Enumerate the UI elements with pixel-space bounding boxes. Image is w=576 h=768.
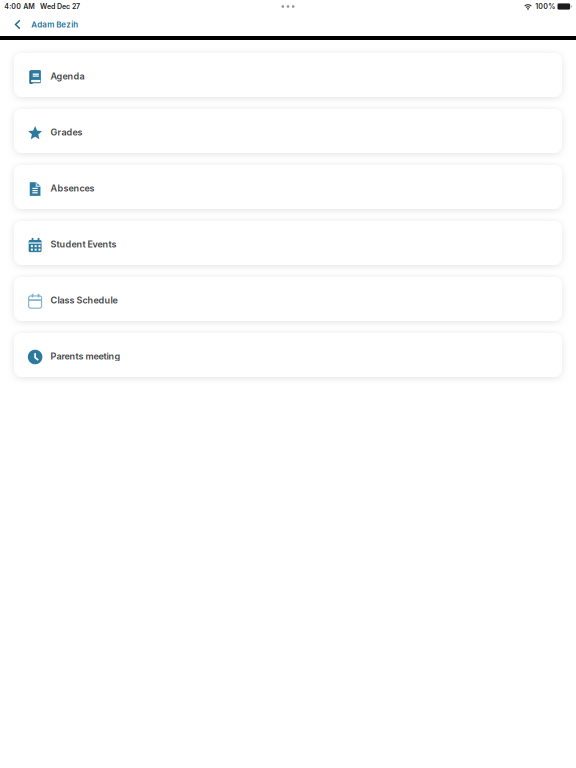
staticText: Grades bbox=[51, 127, 83, 138]
staticText: 4:00 AM bbox=[4, 2, 35, 11]
button[interactable]: Absences bbox=[14, 165, 562, 209]
button[interactable]: Agenda bbox=[14, 53, 562, 97]
staticText: Adam Bezih bbox=[31, 20, 78, 29]
button[interactable]: Parents meeting bbox=[14, 333, 562, 377]
button[interactable]: Back to Adam Bezih bbox=[0, 13, 78, 36]
button[interactable]: Class Schedule bbox=[14, 277, 562, 321]
staticText: Absences bbox=[51, 183, 95, 194]
staticText: Agenda bbox=[51, 71, 85, 82]
staticText: Parents meeting bbox=[51, 351, 121, 362]
staticText: 100% bbox=[535, 2, 555, 11]
button[interactable]: Student Events bbox=[14, 221, 562, 265]
button[interactable]: Grades bbox=[14, 109, 562, 153]
staticText: Wed Dec 27 bbox=[40, 2, 80, 11]
staticText: Class Schedule bbox=[51, 295, 118, 306]
staticText: Student Events bbox=[51, 239, 117, 250]
